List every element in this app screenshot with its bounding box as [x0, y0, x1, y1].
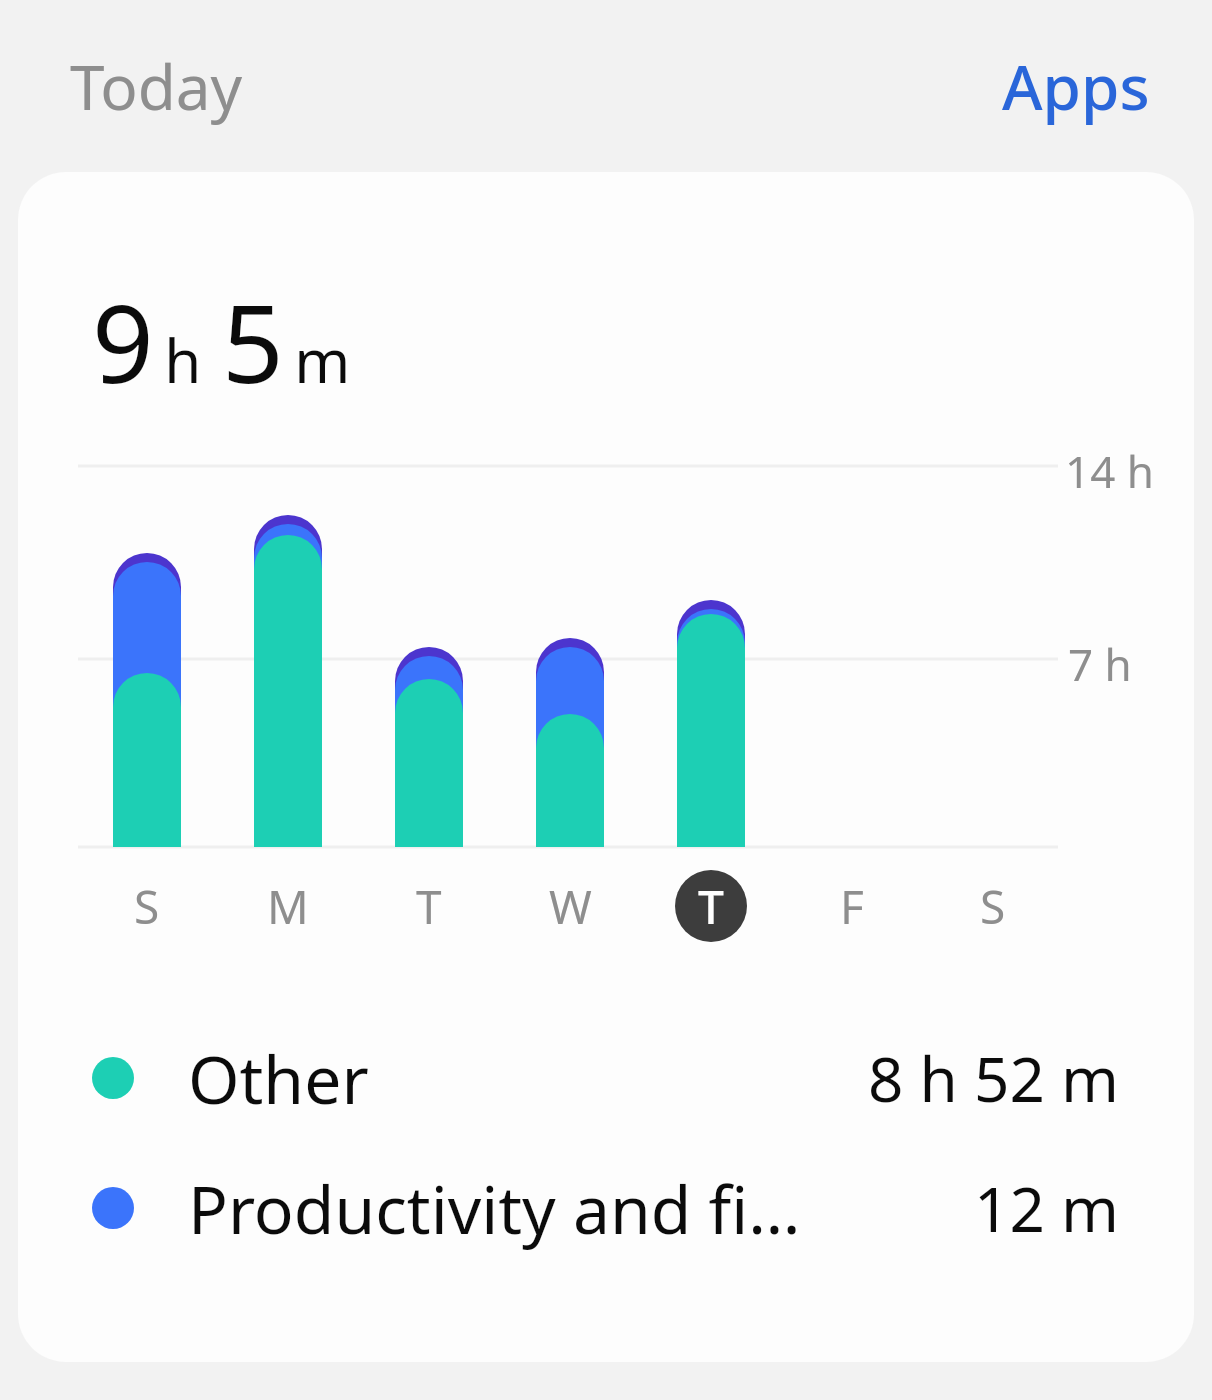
- button[interactable]: T: [671, 866, 751, 946]
- button[interactable]: Today: [70, 44, 243, 128]
- staticText: S: [134, 875, 160, 938]
- button[interactable]: W: [530, 866, 610, 946]
- button[interactable]: M: [248, 866, 328, 946]
- staticText: 7 h: [1068, 634, 1132, 694]
- staticText: 14 h: [1065, 441, 1154, 501]
- staticText: 9 h 5 m: [92, 268, 351, 415]
- staticText: S: [980, 875, 1006, 938]
- staticText: M: [267, 875, 309, 938]
- staticText: T: [416, 875, 442, 938]
- staticText: F: [840, 875, 864, 938]
- button[interactable]: F: [812, 866, 892, 946]
- staticText: Apps: [1002, 44, 1150, 128]
- staticText: T: [698, 875, 724, 938]
- button[interactable]: Other: [92, 1033, 1120, 1123]
- button[interactable]: Apps: [1002, 44, 1150, 128]
- staticText: Other: [188, 1033, 369, 1123]
- staticText: Today: [70, 44, 243, 128]
- staticText: 8 h 52 m: [868, 1036, 1120, 1120]
- staticText: Productivity and fi…: [188, 1163, 801, 1253]
- button[interactable]: S: [953, 866, 1033, 946]
- button[interactable]: S: [107, 866, 187, 946]
- button[interactable]: T: [389, 866, 469, 946]
- button[interactable]: Productivity and fi…: [92, 1163, 1120, 1253]
- staticText: 12 m: [974, 1166, 1120, 1250]
- staticText: W: [549, 875, 592, 938]
